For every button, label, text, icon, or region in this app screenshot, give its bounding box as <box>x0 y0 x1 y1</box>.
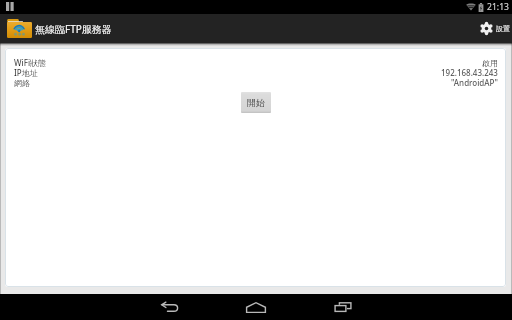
staticText: 開始 <box>247 97 265 108</box>
button[interactable]: Back <box>147 294 192 320</box>
staticText: 啟用 <box>482 58 498 68</box>
button[interactable]: Home <box>233 294 278 320</box>
staticText: 無線臨FTP服務器 <box>35 22 112 36</box>
button[interactable]: 設置 Settings <box>476 14 512 43</box>
button[interactable]: 開始 Start <box>241 92 271 113</box>
staticText: "AndroidAP" <box>451 77 498 88</box>
staticText: 21:13 <box>487 1 509 13</box>
staticText: 設置 <box>496 24 510 33</box>
button[interactable]: 無線臨FTP服務器, Home <box>0 14 118 43</box>
staticText: 192.168.43.243 <box>441 67 498 78</box>
staticText: WiFi狀態 <box>14 57 47 68</box>
button[interactable]: Recents <box>320 294 365 320</box>
staticText: IP地址 <box>14 67 38 78</box>
staticText: 網絡 <box>14 78 30 88</box>
